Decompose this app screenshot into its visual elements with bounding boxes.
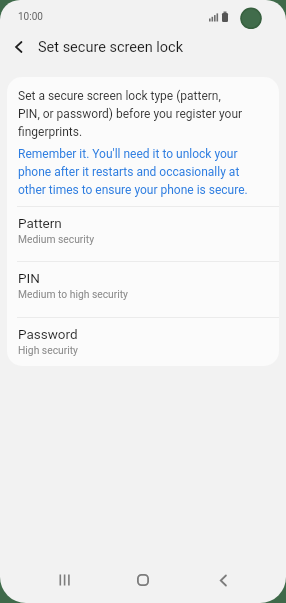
staticText: Remember it. You'll need it to unlock yo… <box>18 147 248 197</box>
button[interactable]: Password <box>7 318 279 366</box>
staticText: Password <box>18 326 78 342</box>
staticText: Set secure screen lock <box>38 39 184 56</box>
button[interactable] <box>128 565 158 595</box>
button[interactable]: PIN <box>7 262 279 317</box>
staticText: Medium security <box>18 233 95 245</box>
staticText: High security <box>18 344 78 356</box>
button[interactable] <box>208 565 238 595</box>
button[interactable] <box>50 565 80 595</box>
staticText: Pattern <box>18 215 62 231</box>
staticText: 10:00 <box>18 11 43 23</box>
staticText: Medium to high security <box>18 288 128 300</box>
staticText: Set a secure screen lock type (pattern, … <box>18 89 243 139</box>
staticText: PIN <box>18 270 40 286</box>
button[interactable] <box>3 31 35 63</box>
button[interactable]: Pattern <box>7 207 279 261</box>
